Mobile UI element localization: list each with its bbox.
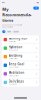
button[interactable]: New — [6, 30, 11, 33]
staticText: All — [3, 31, 4, 33]
button[interactable]: Morning Run — [2, 35, 39, 44]
staticText: Daily Steps — [8, 80, 23, 83]
staticText: Calm your mind — [8, 75, 18, 77]
staticText: Based on your recent activity — [2, 24, 22, 26]
button[interactable]: Stretching — [2, 53, 39, 61]
staticText: Recommendations — [2, 12, 31, 23]
staticText: Hydration — [8, 45, 22, 49]
staticText: Meditation — [8, 71, 24, 74]
staticText: Drink 2L today — [8, 49, 18, 51]
staticText: New — [7, 31, 10, 33]
button[interactable]: Sleep Goal — [2, 61, 39, 69]
staticText: Saved — [13, 31, 18, 33]
staticText: 10 min routine — [8, 58, 17, 59]
staticText: ▮▮ — [37, 2, 39, 3]
button[interactable]: Daily Steps — [2, 78, 39, 87]
staticText: My — [2, 7, 8, 12]
staticText: and saved items — [2, 26, 13, 28]
staticText: 5 km · 28 min — [8, 41, 15, 42]
staticText: Edit — [35, 7, 38, 9]
button[interactable]: Hydration — [2, 44, 39, 52]
staticText: Stretching — [8, 54, 22, 57]
staticText: 8 hours nightly — [8, 66, 18, 68]
staticText: 9:41 — [2, 2, 5, 3]
staticText: Morning Run — [8, 37, 27, 40]
button[interactable]: Meditation — [2, 70, 39, 78]
button[interactable]: Edit — [33, 7, 39, 10]
button[interactable]: Saved — [12, 30, 20, 33]
button[interactable]: All — [2, 30, 5, 33]
staticText: Sleep Goal — [8, 62, 24, 66]
staticText: 10,000 today — [8, 83, 17, 85]
